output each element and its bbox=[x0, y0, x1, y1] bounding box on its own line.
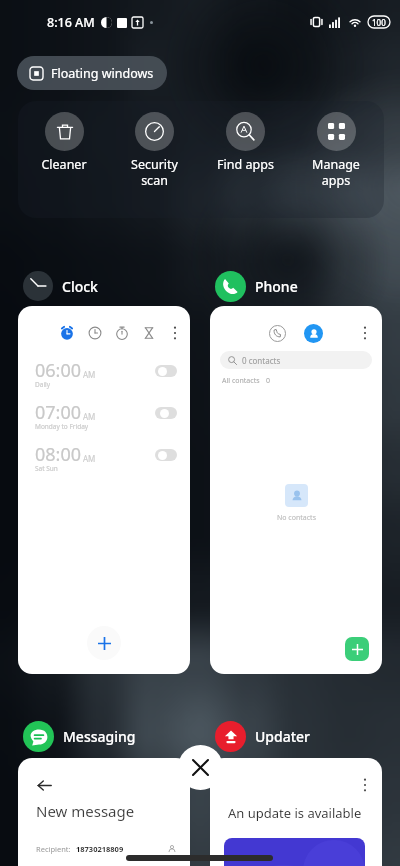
staticText: No contacts bbox=[277, 513, 316, 523]
button[interactable]: An update is available bbox=[210, 758, 382, 866]
staticText: AM bbox=[83, 453, 96, 464]
button[interactable]: Back bbox=[18, 758, 190, 866]
button[interactable]: Manage apps bbox=[300, 112, 372, 188]
button[interactable]: Close bbox=[178, 745, 223, 790]
button[interactable]: Toggle alarm bbox=[155, 449, 177, 461]
button[interactable]: Recent calls bbox=[210, 306, 382, 674]
staticText: Security scan bbox=[131, 156, 178, 188]
button[interactable]: Toggle alarm bbox=[155, 365, 177, 377]
staticText: New message bbox=[36, 801, 135, 821]
staticText: AM bbox=[83, 369, 96, 380]
button[interactable]: Back bbox=[37, 778, 52, 793]
staticText: Find apps bbox=[217, 156, 274, 173]
staticText: Monday to Friday bbox=[35, 422, 89, 431]
button[interactable]: Find apps bbox=[209, 112, 281, 173]
staticText: AM bbox=[83, 411, 96, 422]
staticText: 100 bbox=[372, 17, 386, 28]
button[interactable]: Contacts bbox=[304, 324, 323, 343]
button[interactable]: Clock bbox=[23, 270, 98, 302]
button[interactable]: Recent calls bbox=[268, 324, 286, 342]
staticText: 08:00 bbox=[35, 442, 82, 467]
staticText: 07:00 bbox=[35, 400, 82, 425]
button[interactable]: Floating windows bbox=[17, 56, 167, 90]
staticText: Updater bbox=[255, 727, 311, 746]
staticText: Recipient: bbox=[36, 844, 71, 854]
staticText: Daily bbox=[35, 380, 51, 389]
staticText: An update is available bbox=[228, 804, 362, 822]
staticText: 8:16 AM bbox=[47, 14, 95, 31]
button[interactable]: Cleaner bbox=[28, 112, 100, 173]
staticText: 06:00 bbox=[35, 358, 82, 383]
staticText: Cleaner bbox=[41, 156, 87, 173]
staticText: Sat Sun bbox=[35, 464, 58, 473]
button[interactable]: 0 contacts bbox=[220, 351, 372, 369]
staticText: 0 contacts bbox=[242, 355, 281, 366]
staticText: Messaging bbox=[63, 727, 136, 746]
button[interactable]: Updater bbox=[215, 720, 311, 752]
button[interactable]: Add alarm bbox=[87, 626, 121, 660]
staticText: Phone bbox=[255, 277, 298, 296]
staticText: 18730218809 bbox=[76, 844, 124, 854]
staticText: All contacts bbox=[222, 376, 260, 386]
staticText: Manage apps bbox=[312, 156, 360, 188]
staticText: Clock bbox=[62, 277, 98, 296]
button[interactable]: Toggle alarm bbox=[155, 407, 177, 419]
button[interactable]: Phone bbox=[215, 270, 298, 302]
staticText: Floating windows bbox=[51, 65, 154, 82]
button[interactable]: Add contact bbox=[345, 637, 369, 661]
staticText: 0 bbox=[266, 376, 271, 386]
button[interactable]: 06:00 bbox=[18, 306, 190, 674]
button[interactable]: Security scan bbox=[118, 112, 190, 188]
button[interactable]: Messaging bbox=[23, 720, 136, 752]
